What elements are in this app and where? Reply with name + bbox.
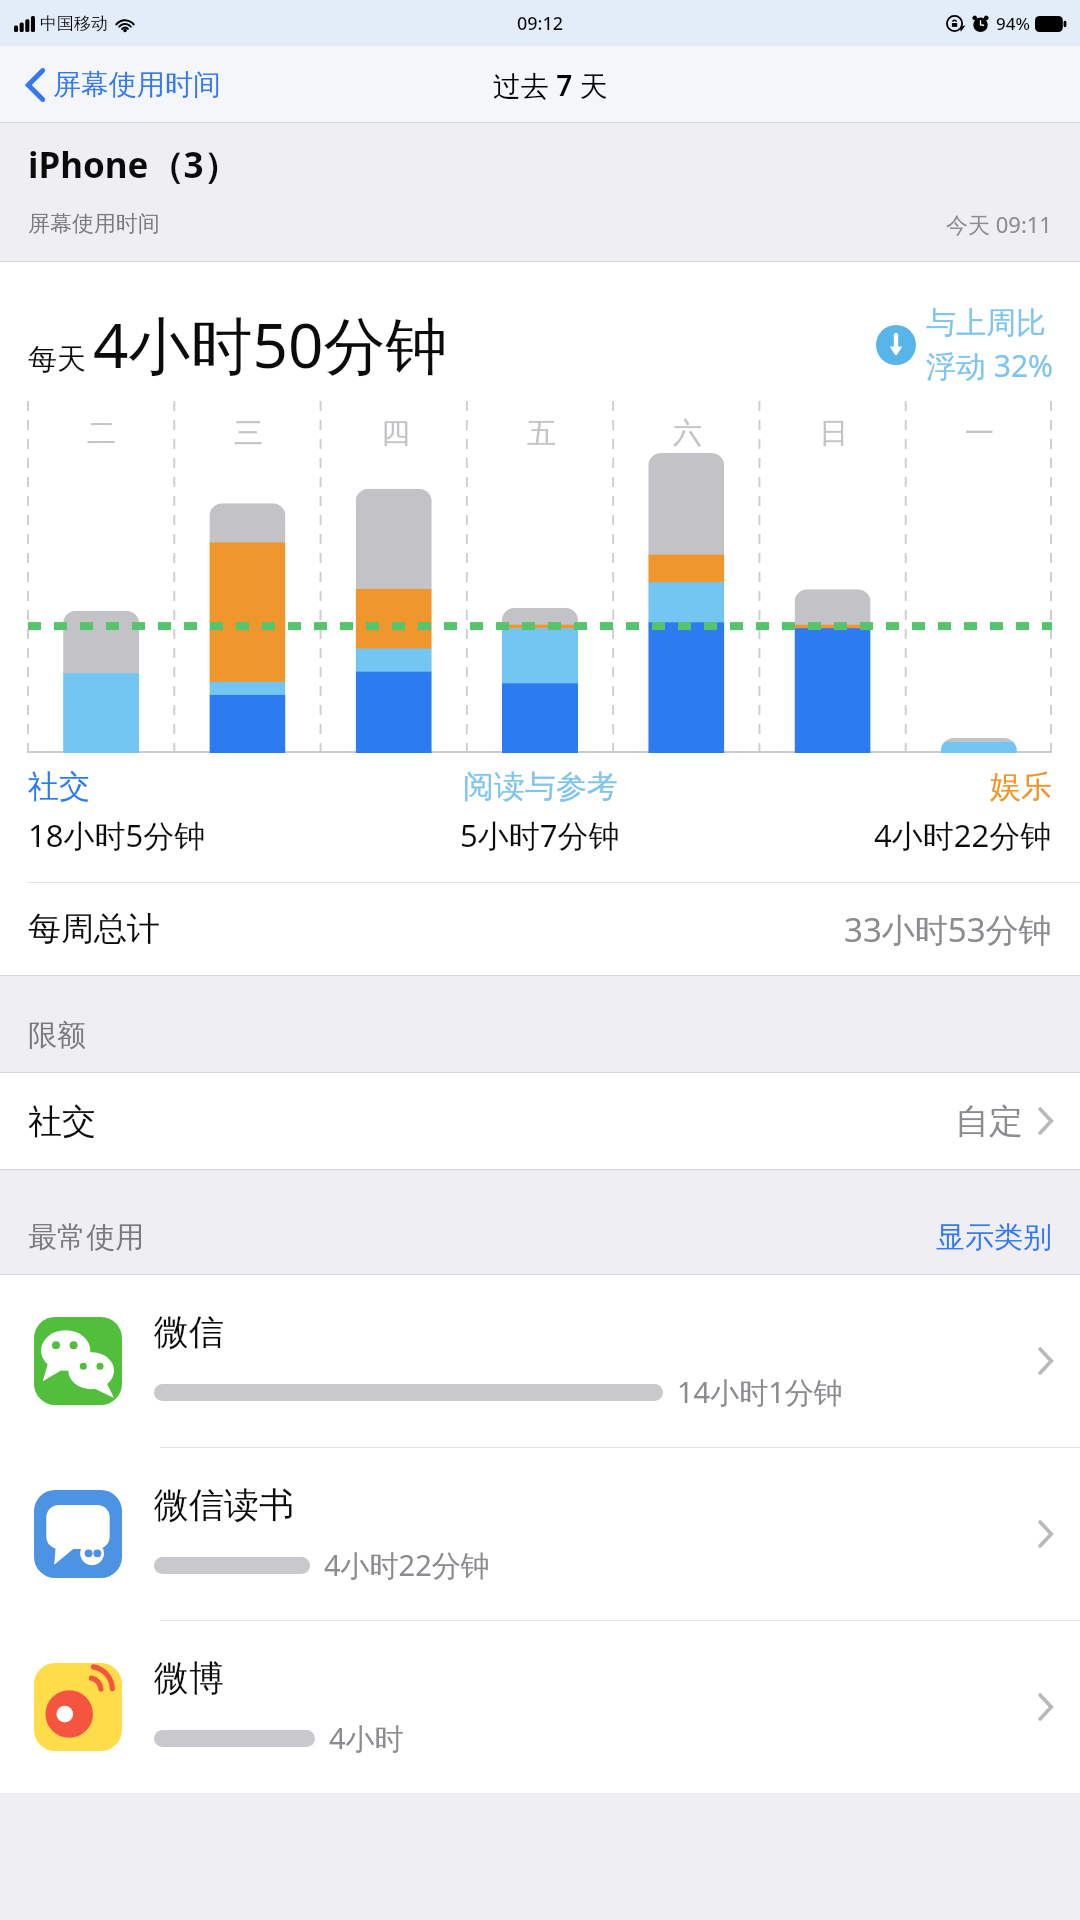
staticText: 娱乐 [990, 767, 1052, 806]
staticText: 今天 09:11 [946, 209, 1052, 239]
staticText: 一 [965, 415, 994, 452]
staticText: 日 [819, 415, 848, 452]
staticText: 微信 [154, 1310, 224, 1354]
staticText: 微博 [154, 1656, 224, 1700]
staticText: 屏幕使用时间 [53, 67, 221, 102]
staticText: 4小时22分钟 [324, 1545, 490, 1585]
staticText: 4小时50分钟 [93, 302, 448, 387]
staticText: 浮动 32% [926, 345, 1054, 386]
staticText: 五 [527, 415, 556, 452]
staticText: 阅读与参考 [463, 767, 618, 806]
staticText: 与上周比 [926, 304, 1046, 342]
button[interactable]: 微博 [0, 1621, 1080, 1793]
button[interactable]: 微信 [0, 1275, 1080, 1447]
button[interactable]: 微信读书 [0, 1448, 1080, 1620]
button[interactable]: 屏幕使用时间 [0, 57, 235, 112]
button[interactable]: 显示类别 [936, 1219, 1052, 1256]
staticText: 限额 [28, 1017, 86, 1054]
button[interactable]: 每周总计 [0, 883, 1080, 975]
staticText: 中国移动 [40, 13, 108, 34]
staticText: 4小时22分钟 [874, 814, 1052, 856]
other: 微博 [34, 1663, 122, 1751]
staticText: 最常使用 [28, 1219, 144, 1256]
staticText: iPhone（3） [28, 141, 239, 189]
staticText: 18小时5分钟 [28, 814, 206, 856]
staticText: 14小时1分钟 [677, 1372, 843, 1412]
staticText: 社交 [28, 1100, 96, 1143]
other: 微信读书 [34, 1490, 122, 1578]
staticText: 六 [673, 415, 702, 452]
staticText: 4小时 [329, 1718, 404, 1758]
button[interactable]: 社交 [0, 1073, 1080, 1169]
staticText: 二 [87, 415, 116, 452]
other: 微信 [34, 1317, 122, 1405]
staticText: 每周总计 [28, 908, 160, 950]
staticText: 94% [996, 12, 1030, 35]
staticText: 三 [234, 415, 263, 452]
staticText: 每天 [28, 341, 86, 378]
staticText: 微信读书 [154, 1483, 294, 1527]
staticText: 5小时7分钟 [460, 814, 620, 856]
staticText: 屏幕使用时间 [28, 210, 160, 238]
staticText: 09:12 [517, 11, 564, 36]
staticText: 33小时53分钟 [844, 907, 1052, 952]
staticText: 显示类别 [936, 1219, 1052, 1256]
staticText: 过去 7 天 [493, 66, 608, 104]
staticText: 自定 [955, 1100, 1023, 1143]
staticText: 四 [381, 415, 410, 452]
staticText: 社交 [28, 767, 90, 806]
other: 下降 [876, 325, 916, 365]
